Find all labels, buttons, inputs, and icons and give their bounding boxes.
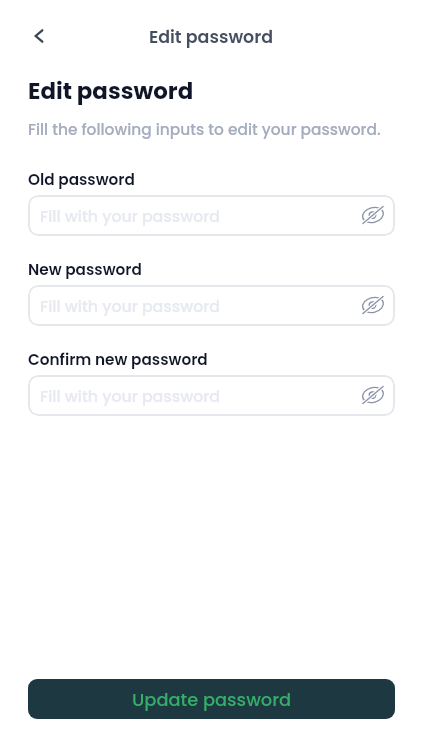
button[interactable]: Fill with your password [28,195,395,236]
button[interactable]: Show password [359,201,387,229]
staticText: New password [28,259,142,280]
staticText: Confirm new password [28,349,208,370]
staticText: Fill with your password [40,295,221,317]
staticText: Old password [28,169,135,190]
staticText: Edit password [0,25,422,49]
staticText: Edit password [28,75,194,107]
staticText: Fill with your password [40,205,221,227]
staticText: Fill the following inputs to edit your p… [28,119,381,141]
button[interactable]: Show password [359,381,387,409]
button[interactable]: Show password [359,291,387,319]
button[interactable]: Fill with your password [28,285,395,326]
button[interactable]: Back [21,18,57,54]
button[interactable]: Fill with your password [28,375,395,416]
button[interactable]: Update password [28,679,395,719]
staticText: Update password [132,687,292,712]
staticText: Fill with your password [40,385,221,407]
